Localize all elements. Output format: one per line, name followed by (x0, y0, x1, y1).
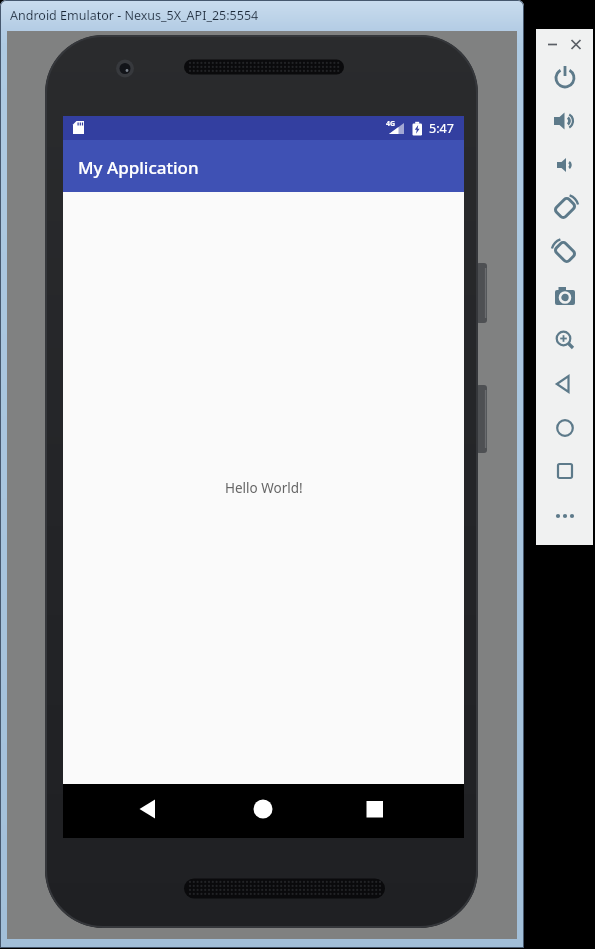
staticText: My Application (78, 156, 199, 179)
button[interactable] (547, 498, 583, 534)
button[interactable] (547, 234, 583, 270)
button[interactable] (233, 784, 293, 838)
button[interactable] (547, 453, 583, 489)
button[interactable]: Android Emulator - Nexus_5X_API_25:5554 (0, 0, 524, 31)
button[interactable] (547, 103, 583, 139)
staticText: Android Emulator - Nexus_5X_API_25:5554 (10, 7, 259, 24)
button[interactable] (543, 34, 563, 54)
button[interactable] (547, 366, 583, 402)
button[interactable] (547, 147, 583, 183)
button[interactable] (547, 322, 583, 358)
button[interactable] (118, 784, 178, 838)
staticText: Hello World! (225, 479, 303, 497)
button[interactable] (345, 784, 405, 838)
button[interactable] (547, 410, 583, 446)
staticText: 4G (386, 119, 396, 129)
staticText: 5:47 (429, 120, 454, 137)
button[interactable] (566, 34, 586, 54)
button[interactable] (547, 278, 583, 314)
button[interactable] (547, 59, 583, 95)
button[interactable] (547, 190, 583, 226)
